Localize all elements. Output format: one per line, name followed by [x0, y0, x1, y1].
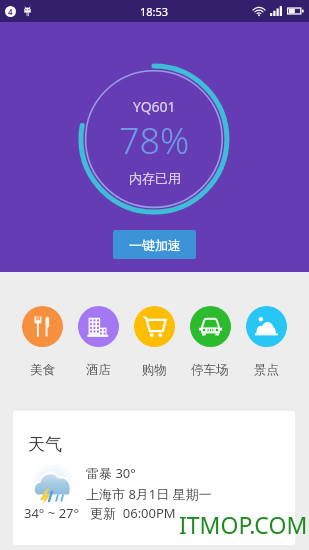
button[interactable]: 停车场 — [184, 306, 236, 378]
staticText: 景点 — [254, 362, 279, 378]
staticText: 上海市 8月1日 星期一 — [86, 485, 212, 503]
staticText: 4 — [8, 6, 13, 17]
staticText: 一键加速 — [129, 237, 181, 253]
button[interactable]: 酒店 — [72, 306, 124, 378]
staticText: 78% — [119, 116, 190, 165]
staticText: 34° ~ 27° — [24, 504, 80, 522]
button[interactable]: 一键加速 — [113, 230, 196, 259]
button[interactable]: 天气 — [13, 411, 295, 545]
staticText: 天气 — [28, 434, 62, 455]
staticText: 内存已用 — [129, 170, 181, 186]
button[interactable]: 美食 — [16, 306, 68, 378]
staticText: 18:53 — [140, 4, 169, 19]
staticText: 酒店 — [86, 362, 111, 378]
staticText: 更新 06:00PM — [90, 504, 176, 522]
button[interactable]: 景点 — [240, 306, 292, 378]
staticText: 雷暴 30° — [86, 464, 136, 482]
staticText: YQ601 — [133, 97, 176, 116]
staticText: ITMOP.COM — [179, 509, 308, 540]
staticText: 购物 — [142, 362, 167, 378]
button[interactable]: 购物 — [128, 306, 180, 378]
staticText: 停车场 — [191, 362, 229, 378]
staticText: 美食 — [30, 362, 55, 378]
